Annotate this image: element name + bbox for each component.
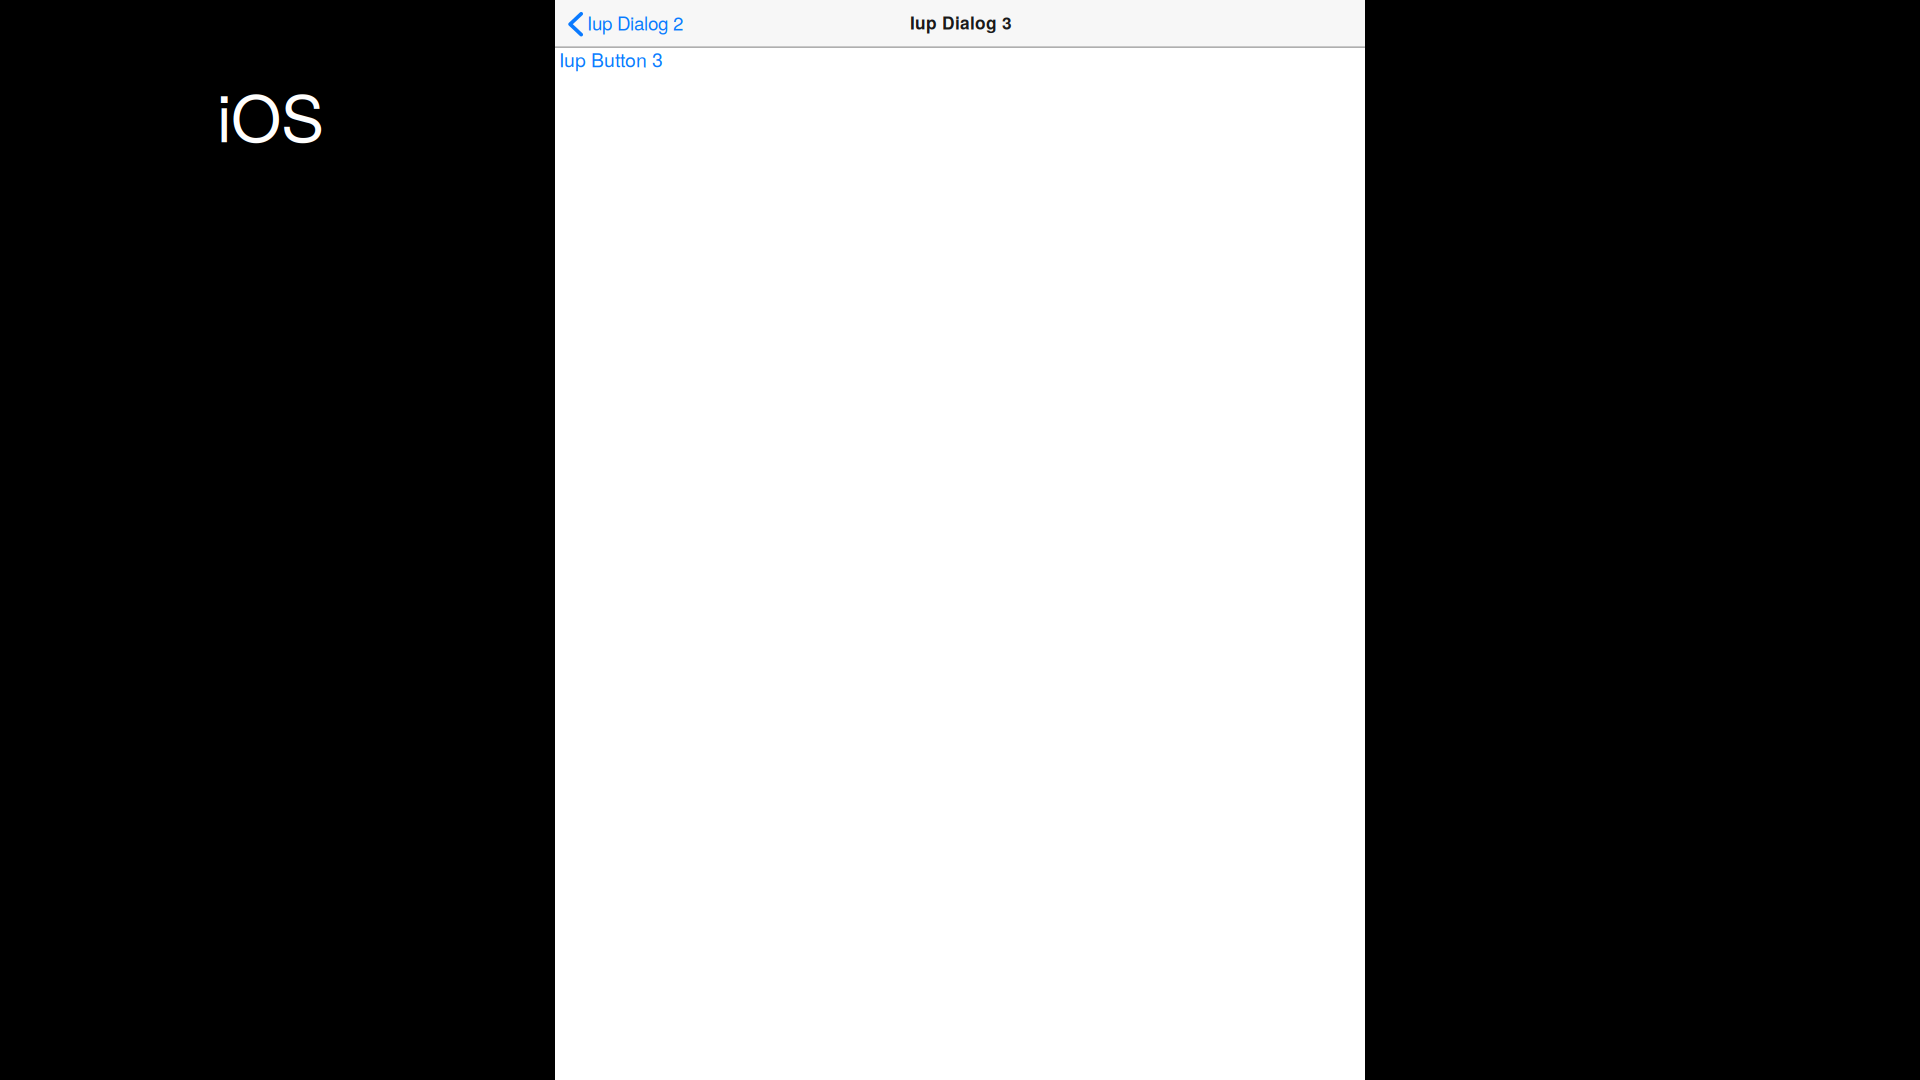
button[interactable]: Iup Button 3 (555, 48, 1365, 74)
button[interactable]: Back to Iup Dialog 2 (555, 0, 693, 46)
staticText: iOS (217, 68, 324, 161)
staticText: Iup Button 3 (559, 45, 663, 73)
staticText: Iup Dialog 2 (587, 9, 683, 36)
staticText: Iup Dialog 3 (910, 10, 1012, 35)
